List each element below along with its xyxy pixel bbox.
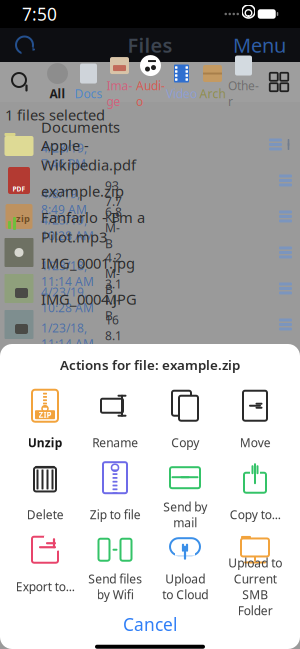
staticText: 937.7 KB (105, 178, 122, 225)
staticText: Copy to... (229, 507, 280, 523)
button[interactable]: zip (0, 198, 300, 234)
button[interactable]: All (42, 60, 73, 103)
staticText: Apple - Wikipedia.pdf (41, 136, 136, 175)
staticText: 7:50 (22, 2, 57, 25)
button[interactable]: Upload to Current SMB Folder (220, 530, 290, 602)
button[interactable]: Grid view (267, 70, 300, 94)
button[interactable]: Menu (233, 26, 300, 64)
staticText: example.zip (41, 181, 124, 201)
staticText: Documents (41, 117, 120, 137)
button[interactable]: Send files by Wifi (80, 530, 150, 602)
staticText: 4/23/19, 7:46 PM (41, 140, 87, 172)
staticText: Unzip (27, 435, 62, 451)
button[interactable]: Delete (10, 458, 80, 530)
staticText: 3.1 MB (105, 276, 122, 324)
staticText: All (49, 85, 65, 101)
button[interactable]: Fanfarlo - I'm a Pilot.mp3 (0, 234, 300, 270)
staticText: zip (16, 212, 30, 225)
staticText: 4/23/19, 10:28 AM (41, 284, 94, 316)
staticText: Actions for file: example.zip (60, 356, 240, 374)
button[interactable]: Arch (197, 60, 228, 103)
staticText: Video (166, 85, 197, 101)
staticText: Zip to file (89, 507, 140, 523)
staticText: Other (228, 78, 259, 109)
button[interactable]: Docs (73, 60, 104, 103)
staticText: 4.2 MB (105, 250, 122, 297)
button[interactable]: Copy (150, 386, 220, 458)
button[interactable]: Search (0, 69, 34, 95)
button[interactable]: Zip to file (80, 458, 150, 530)
staticText: Files (127, 32, 172, 58)
staticText: 1 files selected (5, 105, 105, 124)
staticText: Image (106, 78, 132, 109)
button[interactable]: Documents (0, 126, 300, 162)
button[interactable]: IMG_0001.jpg (0, 270, 300, 306)
staticText: 1/23/18, 11:14 AM (41, 257, 94, 289)
button[interactable]: Other (228, 53, 259, 111)
button[interactable]: Move (220, 386, 290, 458)
staticText: 168.1 KB (105, 312, 122, 360)
staticText: Upload to Current SMB Folder (228, 555, 282, 618)
button[interactable]: Rename (80, 386, 150, 458)
staticText: Export to... (15, 579, 74, 595)
staticText: Rename (92, 435, 138, 451)
staticText: 6.8 MB (105, 204, 122, 252)
button[interactable]: Back (0, 28, 42, 62)
button[interactable]: Audio (135, 53, 166, 111)
staticText: 4/23/19, 10:28 AM (41, 212, 94, 244)
staticText: Arch (199, 85, 225, 101)
staticText: Menu (233, 32, 286, 58)
staticText: 4/8/19, 8:49 AM (41, 185, 87, 217)
staticText: 1/23/18, 11:14 AM (41, 320, 94, 352)
staticText: Upload to Cloud (162, 571, 208, 603)
staticText: IMG_0004.JPG (41, 289, 137, 309)
button[interactable]: Export to... (10, 530, 80, 602)
staticText: Docs (74, 85, 102, 101)
staticText: Send by mail (163, 499, 207, 531)
button[interactable]: Image (104, 53, 135, 111)
staticText: IMG_0001.jpg (41, 253, 135, 273)
staticText: ZIP (38, 409, 51, 420)
button[interactable]: Send by mail (150, 458, 220, 530)
staticText: Audio (136, 78, 165, 109)
button[interactable]: Cancel (0, 604, 300, 645)
button[interactable]: Copy to... (220, 458, 290, 530)
staticText: Move (239, 435, 270, 451)
button[interactable]: PDF (0, 162, 300, 198)
button[interactable]: IMG_0004.JPG (0, 306, 300, 342)
button[interactable]: Upload to Cloud (150, 530, 220, 602)
button[interactable]: ZIP (10, 386, 80, 458)
button[interactable]: Video (166, 60, 197, 103)
staticText: Fanfarlo - I'm a Pilot.mp3 (41, 208, 145, 247)
staticText: Cancel (123, 613, 177, 636)
staticText: Copy (171, 435, 199, 451)
staticText: PDF (12, 185, 25, 193)
staticText: Send files by Wifi (88, 571, 142, 603)
staticText: Delete (26, 507, 63, 523)
